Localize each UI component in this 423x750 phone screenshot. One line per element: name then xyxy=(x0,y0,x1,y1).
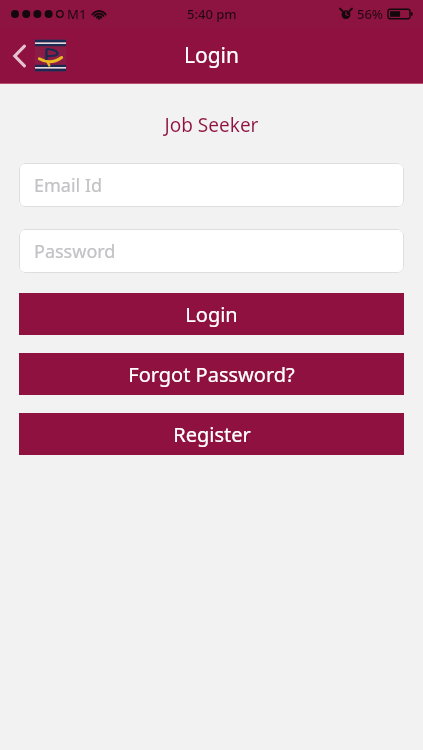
staticText: Email Id xyxy=(34,173,103,198)
staticText: Register xyxy=(173,421,251,448)
staticText: 56% xyxy=(357,5,383,23)
button[interactable]: Email Id xyxy=(19,163,404,207)
staticText: Password xyxy=(34,239,116,264)
staticText: Forgot Password? xyxy=(128,361,295,388)
staticText: Login xyxy=(184,41,240,70)
staticText: M1 xyxy=(67,5,87,23)
button[interactable]: Password xyxy=(19,229,404,273)
button[interactable]: Back xyxy=(0,33,76,78)
button[interactable]: Login xyxy=(19,293,404,335)
staticText: 5:40 pm xyxy=(187,5,237,23)
staticText: Job Seeker xyxy=(0,112,423,138)
button[interactable]: Forgot Password? xyxy=(19,353,404,395)
staticText: Login xyxy=(185,301,238,328)
button[interactable]: App logo xyxy=(35,39,66,72)
button[interactable]: Register xyxy=(19,413,404,455)
